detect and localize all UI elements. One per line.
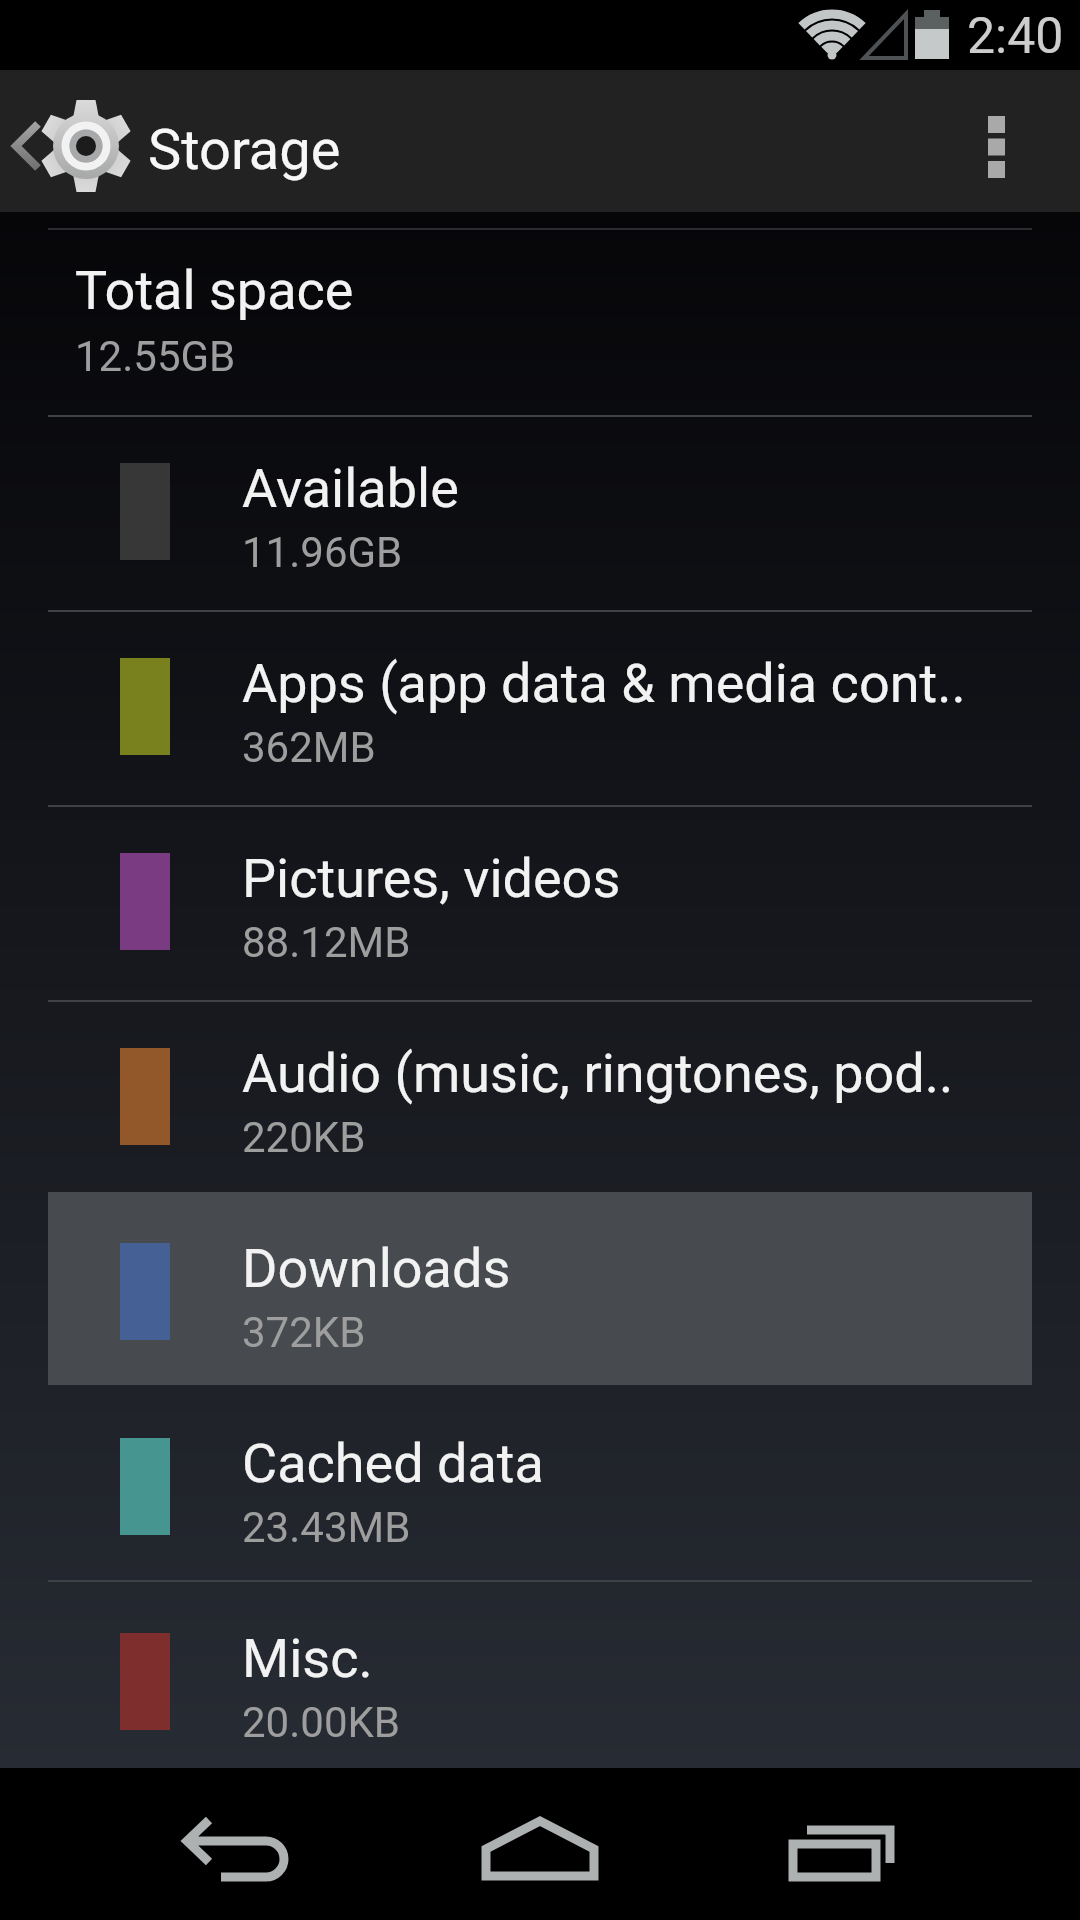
button[interactable]: Cached data xyxy=(0,1390,1080,1585)
button[interactable] xyxy=(450,1790,630,1910)
staticText: 88.12MB xyxy=(242,918,411,967)
staticText: 220KB xyxy=(242,1113,366,1162)
staticText: Cached data xyxy=(242,1432,544,1495)
staticText: 20.00KB xyxy=(242,1698,401,1747)
button[interactable]: Misc. xyxy=(0,1585,1080,1780)
button[interactable]: Audio (music, ringtones, pod.. xyxy=(0,1000,1080,1195)
button[interactable] xyxy=(750,1790,930,1910)
button[interactable]: Apps (app data & media cont.. xyxy=(0,610,1080,805)
staticText: Storage xyxy=(148,117,341,183)
button[interactable]: Pictures, videos xyxy=(0,805,1080,1000)
staticText: Available xyxy=(242,457,459,520)
staticText: Downloads xyxy=(242,1237,511,1300)
staticText: 362MB xyxy=(242,723,376,772)
staticText: Apps (app data & media cont.. xyxy=(242,652,966,715)
staticText: 12.55GB xyxy=(75,332,236,381)
button[interactable]: Available xyxy=(0,415,1080,610)
button[interactable] xyxy=(950,70,1080,212)
staticText: Audio (music, ringtones, pod.. xyxy=(242,1042,954,1105)
staticText: 23.43MB xyxy=(242,1503,411,1552)
button[interactable] xyxy=(150,1790,330,1910)
staticText: Total space xyxy=(75,259,354,322)
button[interactable]: Storage xyxy=(0,70,400,212)
staticText: Misc. xyxy=(242,1627,373,1690)
staticText: Pictures, videos xyxy=(242,847,621,910)
staticText: 11.96GB xyxy=(242,528,403,577)
button[interactable]: Downloads xyxy=(0,1195,1080,1390)
staticText: 2:40 xyxy=(967,7,1064,66)
button[interactable]: Total space xyxy=(0,220,1080,415)
staticText: 372KB xyxy=(242,1308,366,1357)
